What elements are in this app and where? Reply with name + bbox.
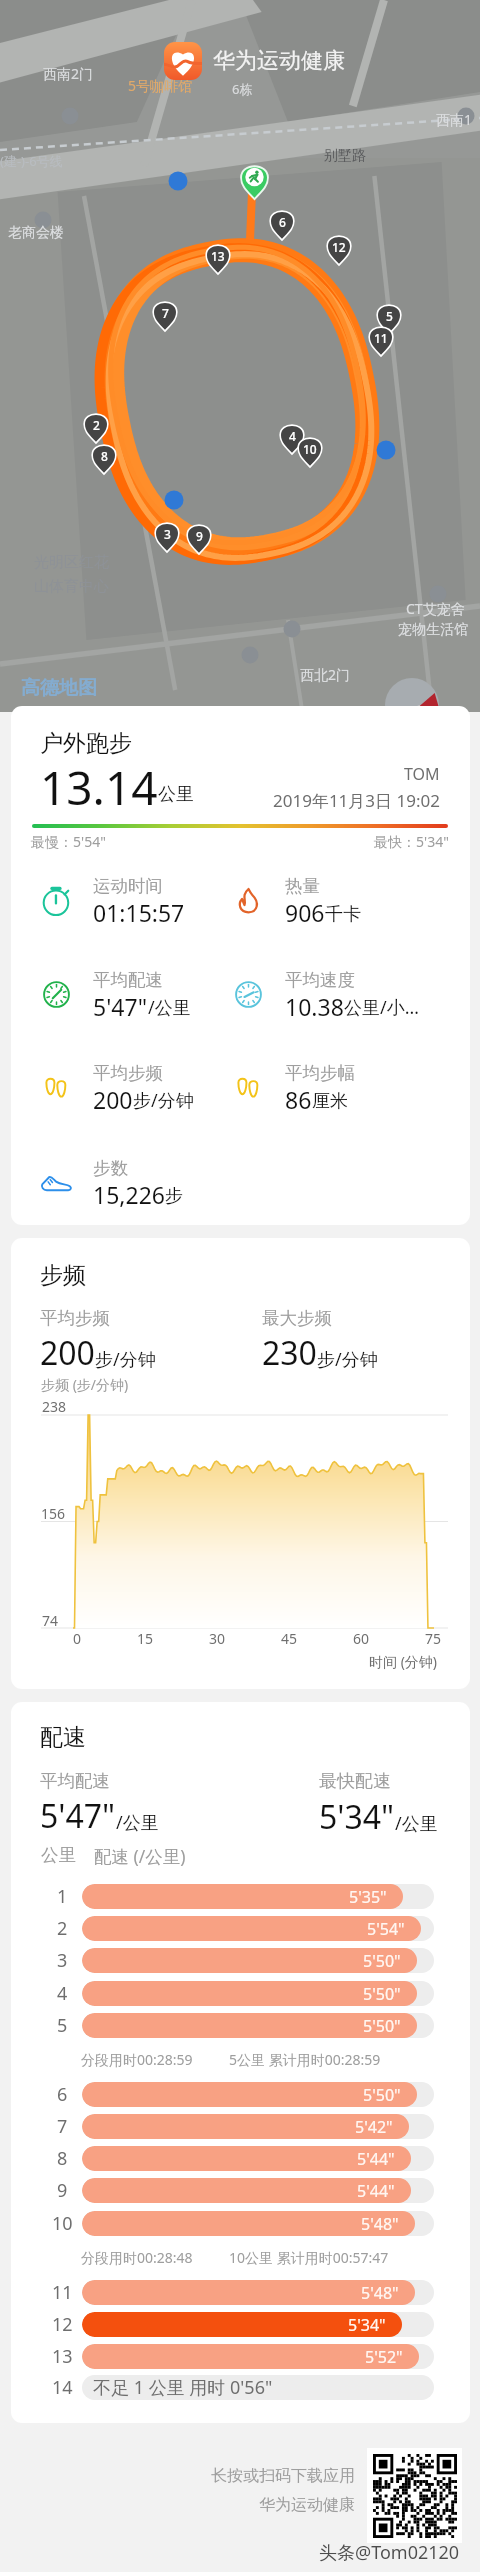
- button[interactable]: 9: [42, 2178, 434, 2203]
- staticText: 分段用时00:28:48: [81, 2248, 193, 2267]
- button[interactable]: 12: [42, 2312, 434, 2337]
- staticText: 45: [269, 1629, 309, 1648]
- staticText: 西北2门: [300, 665, 351, 684]
- staticText: 13: [211, 248, 225, 264]
- staticText: 最慢：5'54": [31, 832, 106, 851]
- staticText: 5'47": [93, 991, 148, 1022]
- staticText: 15,226: [93, 1179, 165, 1210]
- staticText: 86: [285, 1084, 312, 1115]
- staticText: 156: [41, 1504, 66, 1523]
- button[interactable]: 6: [42, 2082, 434, 2107]
- staticText: 光明区红花: [34, 553, 109, 572]
- staticText: 3: [164, 526, 171, 542]
- staticText: 6: [279, 214, 286, 230]
- button[interactable]: 步频: [11, 1238, 470, 1689]
- button[interactable]: 13: [42, 2344, 434, 2369]
- staticText: 5'52": [365, 2346, 403, 2368]
- staticText: 步频: [40, 1261, 86, 1290]
- staticText: 10: [52, 2211, 73, 2236]
- staticText: 230: [262, 1331, 317, 1375]
- staticText: 5号咖啡馆: [128, 76, 193, 95]
- staticText: 步: [165, 1185, 183, 1208]
- staticText: 6栋: [232, 80, 253, 98]
- staticText: 运动时间: [93, 875, 163, 897]
- button[interactable]: 14: [42, 2375, 434, 2400]
- staticText: 5'50": [363, 1983, 401, 2005]
- button[interactable]: 11: [42, 2280, 434, 2305]
- staticText: 9: [57, 2178, 68, 2203]
- staticText: 宠物生活馆: [398, 621, 468, 639]
- staticText: 步/分钟: [133, 1088, 194, 1113]
- staticText: 别墅路: [324, 147, 366, 165]
- button[interactable]: 2: [42, 1916, 434, 1941]
- staticText: 不足 1 公里 用时 0'56": [93, 2375, 273, 2400]
- staticText: 238: [42, 1397, 67, 1416]
- staticText: 1: [57, 1884, 68, 1909]
- staticText: 5'48": [361, 2213, 399, 2235]
- button[interactable]: 10: [42, 2211, 434, 2236]
- staticText: 配速 (/公里): [94, 1844, 186, 1868]
- staticText: 2: [93, 417, 100, 433]
- staticText: 最快配速: [319, 1770, 391, 1793]
- button[interactable]: 5: [42, 2013, 434, 2038]
- staticText: 13.14: [40, 756, 158, 819]
- button[interactable]: 户外跑步: [11, 706, 470, 1225]
- button[interactable]: 7: [42, 2114, 434, 2139]
- staticText: 15: [125, 1629, 165, 1648]
- staticText: /公里: [395, 1811, 438, 1836]
- staticText: 5'48": [361, 2282, 399, 2304]
- staticText: 最大步频: [262, 1307, 332, 1329]
- staticText: 华为运动健康: [259, 2495, 355, 2515]
- staticText: 厘米: [312, 1090, 348, 1113]
- staticText: 千卡: [325, 903, 361, 926]
- staticText: 步/分钟: [317, 1347, 378, 1372]
- button[interactable]: 8: [42, 2146, 434, 2171]
- staticText: 步/分钟: [95, 1347, 156, 1372]
- button[interactable]: Route map: [0, 0, 480, 712]
- staticText: 12: [332, 239, 346, 255]
- staticText: 30: [197, 1629, 237, 1648]
- staticText: 配速: [40, 1723, 86, 1752]
- staticText: 7: [162, 305, 169, 321]
- staticText: 200: [40, 1331, 95, 1375]
- staticText: 12: [52, 2312, 73, 2337]
- staticText: 906: [285, 897, 325, 928]
- staticText: 老商会楼: [8, 224, 64, 242]
- staticText: 5: [386, 308, 393, 324]
- staticText: 5: [57, 2013, 68, 2038]
- staticText: 长按或扫码下载应用: [211, 2466, 355, 2486]
- staticText: 5'54": [367, 1918, 405, 1940]
- button[interactable]: 配速: [11, 1702, 470, 2423]
- staticText: 5'34": [348, 2314, 386, 2336]
- staticText: 平均步频: [93, 1062, 163, 1084]
- staticText: 13: [52, 2344, 73, 2369]
- staticText: 2019年11月3日 19:02: [273, 789, 440, 812]
- staticText: 平均配速: [93, 969, 163, 991]
- staticText: 11: [52, 2280, 73, 2305]
- staticText: 公里: [41, 1844, 76, 1866]
- staticText: 2: [57, 1916, 68, 1941]
- staticText: 公里/小…: [344, 995, 419, 1020]
- staticText: 9: [196, 528, 203, 544]
- staticText: 4: [289, 428, 296, 444]
- staticText: 0: [57, 1629, 97, 1648]
- button[interactable]: 3: [42, 1948, 434, 1973]
- staticText: 高德地图: [21, 676, 97, 700]
- staticText: 平均步频: [40, 1307, 110, 1329]
- staticText: 分段用时00:28:59: [81, 2050, 193, 2069]
- staticText: 10.38: [285, 991, 344, 1022]
- staticText: 7: [57, 2114, 68, 2139]
- staticText: 西南1: [436, 110, 473, 129]
- staticText: 平均配速: [40, 1770, 110, 1792]
- staticText: 14: [52, 2375, 73, 2400]
- staticText: 头条@Tom02120: [319, 2540, 460, 2565]
- staticText: 山体育中心: [34, 577, 109, 596]
- staticText: 最快：5'34": [374, 832, 449, 851]
- staticText: 时间 (分钟): [369, 1652, 438, 1671]
- staticText: 平均步幅: [285, 1062, 355, 1084]
- button[interactable]: 1: [42, 1884, 434, 1909]
- button[interactable]: 4: [42, 1981, 434, 2006]
- staticText: 74: [42, 1611, 59, 1630]
- staticText: 5'44": [357, 2180, 395, 2202]
- staticText: 8: [57, 2146, 68, 2171]
